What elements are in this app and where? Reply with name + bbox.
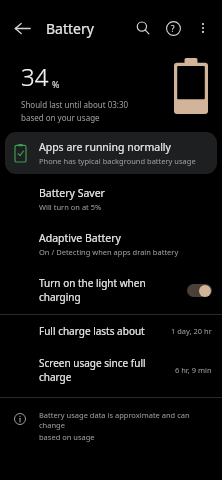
- staticText: On / Detecting when apps drain battery: [39, 247, 179, 257]
- staticText: Phone has typical background battery usa…: [39, 156, 196, 166]
- staticText: Apps are running normally: [39, 140, 171, 154]
- staticText: %: [52, 78, 60, 90]
- staticText: based on usage: [39, 432, 95, 442]
- staticText: Battery usage data is approximate and ca…: [39, 410, 208, 430]
- button[interactable]: More options: [188, 13, 218, 43]
- staticText: 34: [21, 60, 49, 93]
- staticText: ?: [171, 23, 175, 34]
- staticText: based on your usage: [21, 112, 100, 123]
- staticText: Turn on the light when charging: [39, 276, 181, 304]
- button[interactable]: Back: [6, 12, 38, 44]
- staticText: Screen usage since full charge: [39, 356, 171, 384]
- staticText: Full charge lasts about: [39, 324, 167, 338]
- staticText: Will turn on at 5%: [39, 202, 102, 212]
- button[interactable]: Adaptive Battery: [0, 228, 222, 260]
- button[interactable]: Apps are running normally: [5, 132, 217, 174]
- button[interactable]: Battery Saver: [0, 183, 222, 215]
- button[interactable]: Search: [128, 13, 158, 43]
- button[interactable]: Turn on the light when charging: [0, 270, 222, 310]
- staticText: 1 day, 20 hr: [171, 326, 212, 336]
- staticText: Should last until about 03:30: [21, 99, 129, 110]
- staticText: Adaptive Battery: [39, 231, 121, 245]
- staticText: 6 hr, 9 min: [175, 365, 212, 375]
- button[interactable]: Full charge lasts about: [0, 315, 222, 347]
- button[interactable]: Help: [158, 13, 188, 43]
- staticText: Battery: [46, 19, 94, 38]
- staticText: Battery Saver: [39, 186, 105, 200]
- button[interactable]: Screen usage since full charge: [0, 347, 222, 393]
